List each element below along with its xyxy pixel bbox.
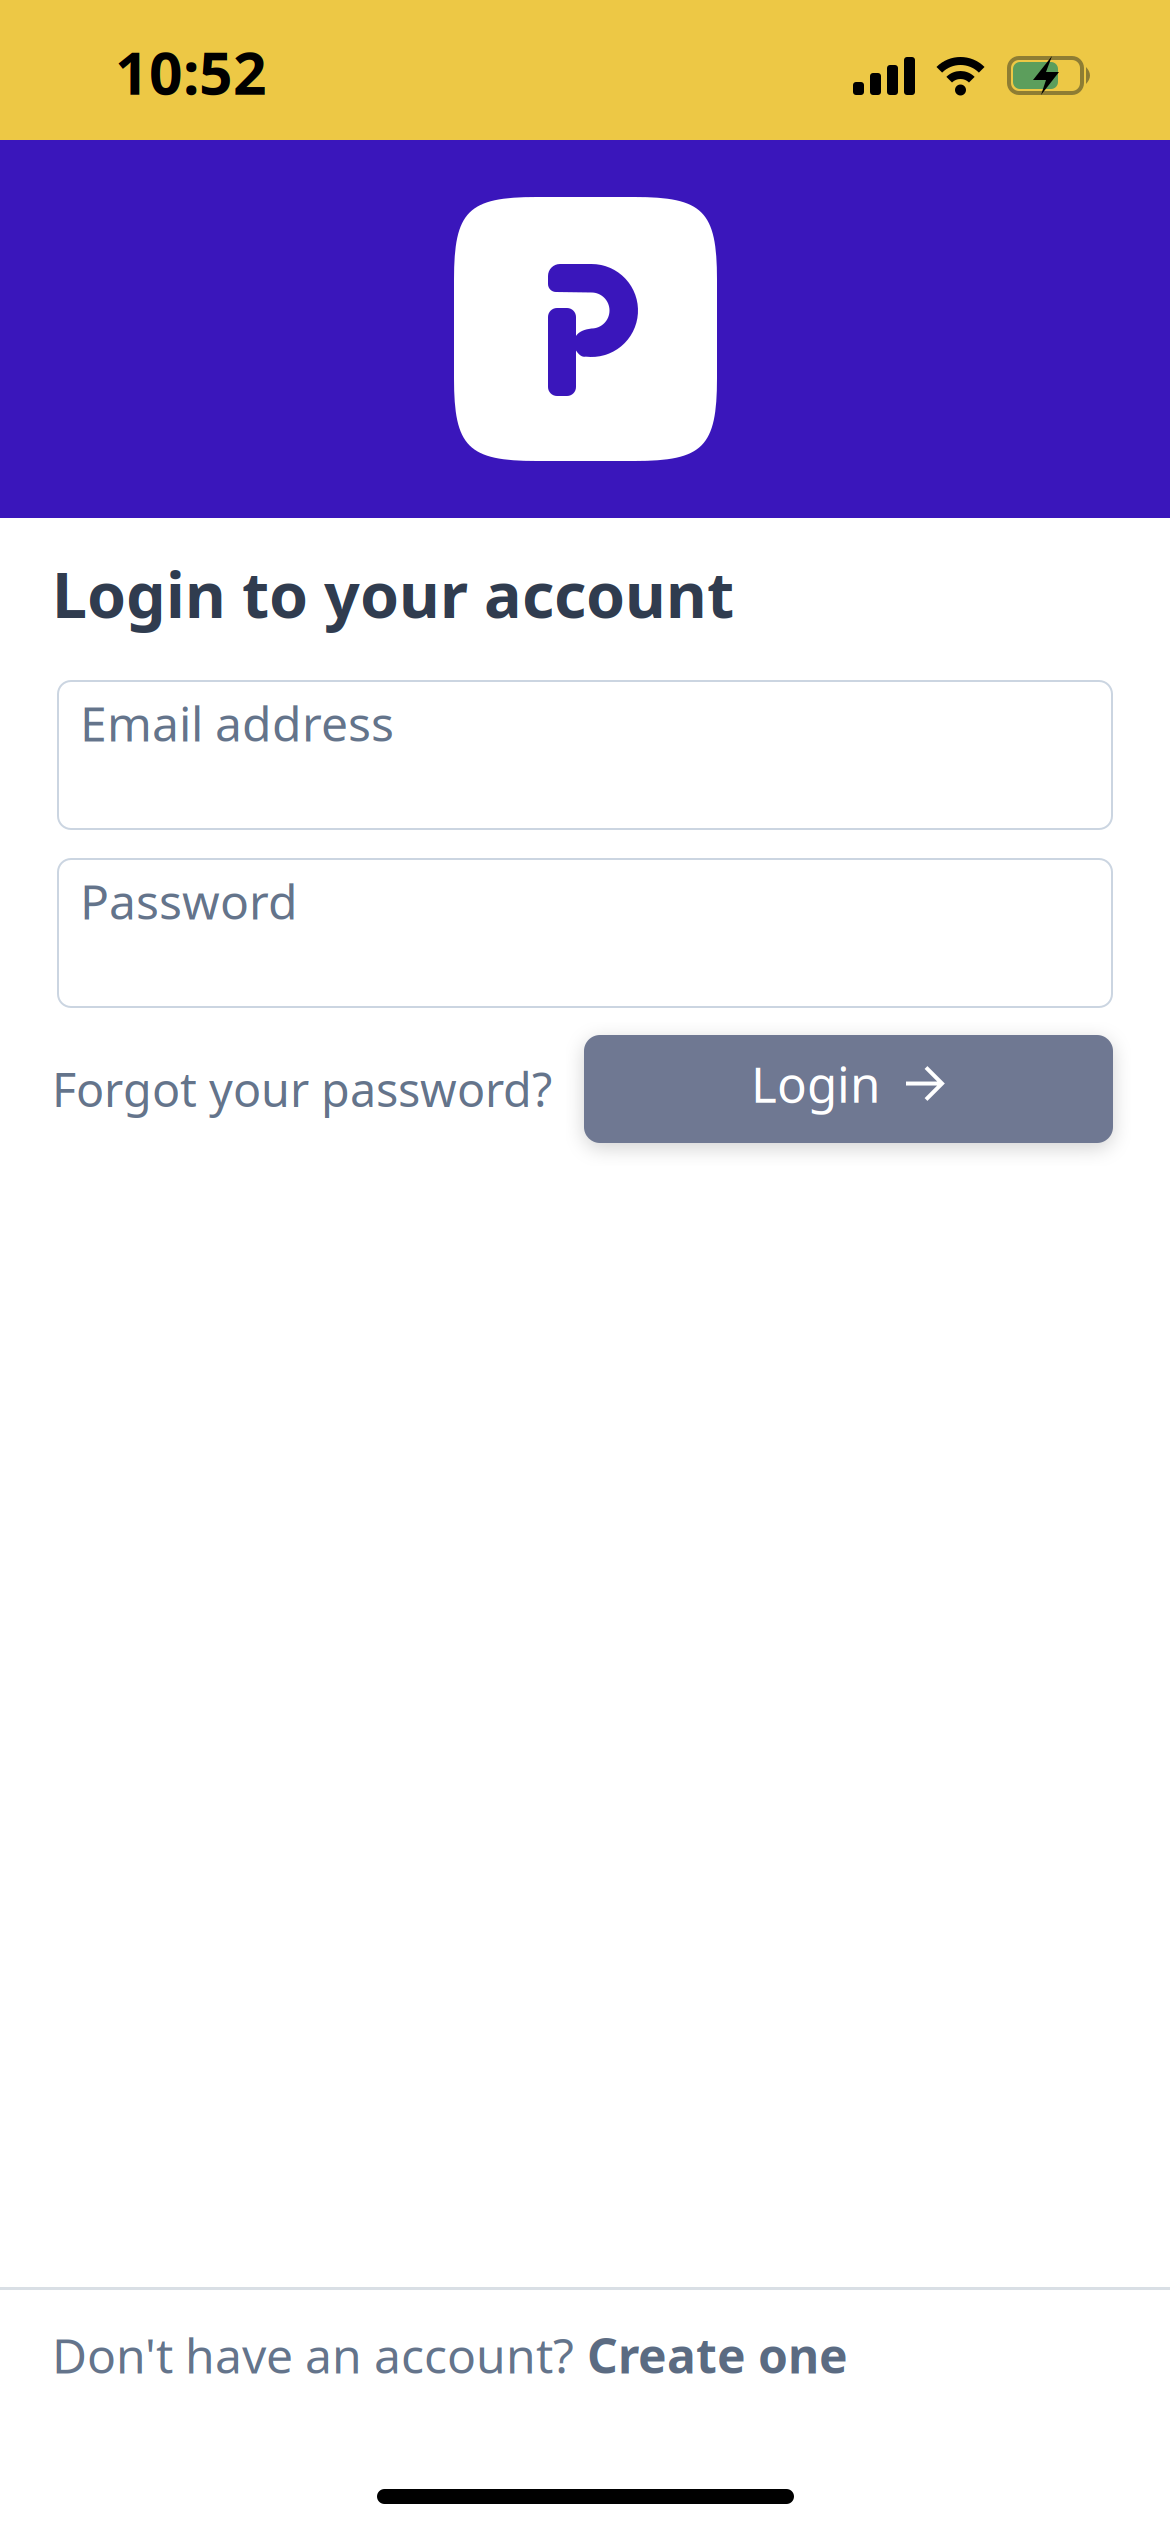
button[interactable]: Login: [584, 1035, 1113, 1143]
button[interactable]: Create one: [587, 2323, 848, 2387]
staticText: Password: [80, 869, 298, 933]
staticText: Create one: [587, 2323, 848, 2387]
staticText: Forgot your password?: [52, 1058, 552, 1120]
staticText: Login: [751, 1051, 880, 1116]
staticText: 10:52: [115, 33, 267, 111]
staticText: Don't have an account?: [52, 2323, 574, 2387]
button[interactable]: Password: [57, 858, 1113, 1008]
button[interactable]: Email address: [57, 680, 1113, 830]
staticText: Login to your account: [52, 552, 734, 635]
staticText: Email address: [80, 691, 394, 755]
button[interactable]: Forgot your password?: [52, 1058, 552, 1120]
